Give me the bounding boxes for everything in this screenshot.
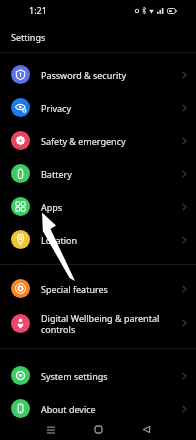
staticText: 1:21 (29, 4, 47, 16)
button[interactable]: Safety & emergency (0, 124, 196, 157)
staticText: Privacy (41, 102, 169, 114)
button[interactable]: Privacy (0, 91, 196, 124)
staticText: Apps (41, 201, 169, 213)
staticText: Location (41, 234, 169, 246)
button[interactable]: Digital Wellbeing & parental controls (0, 305, 196, 341)
staticText: About device (41, 403, 169, 415)
staticText: Special features (41, 283, 169, 295)
button[interactable]: Apps (0, 190, 196, 223)
button[interactable]: Home (84, 418, 112, 440)
staticText: Digital Wellbeing & parental controls (41, 312, 169, 335)
button[interactable]: Password & security (0, 58, 196, 91)
staticText: System settings (41, 370, 169, 382)
staticText: Password & security (41, 69, 169, 81)
staticText: Settings (11, 31, 46, 43)
staticText: Battery (41, 168, 169, 180)
staticText: Safety & emergency (41, 135, 169, 147)
button[interactable]: Battery (0, 157, 196, 190)
button[interactable]: About device (0, 392, 196, 425)
button[interactable]: Location (0, 223, 196, 256)
button[interactable]: Special features (0, 272, 196, 305)
button[interactable]: System settings (0, 359, 196, 392)
button[interactable]: Recents (37, 418, 65, 440)
button[interactable]: Back (132, 418, 160, 440)
